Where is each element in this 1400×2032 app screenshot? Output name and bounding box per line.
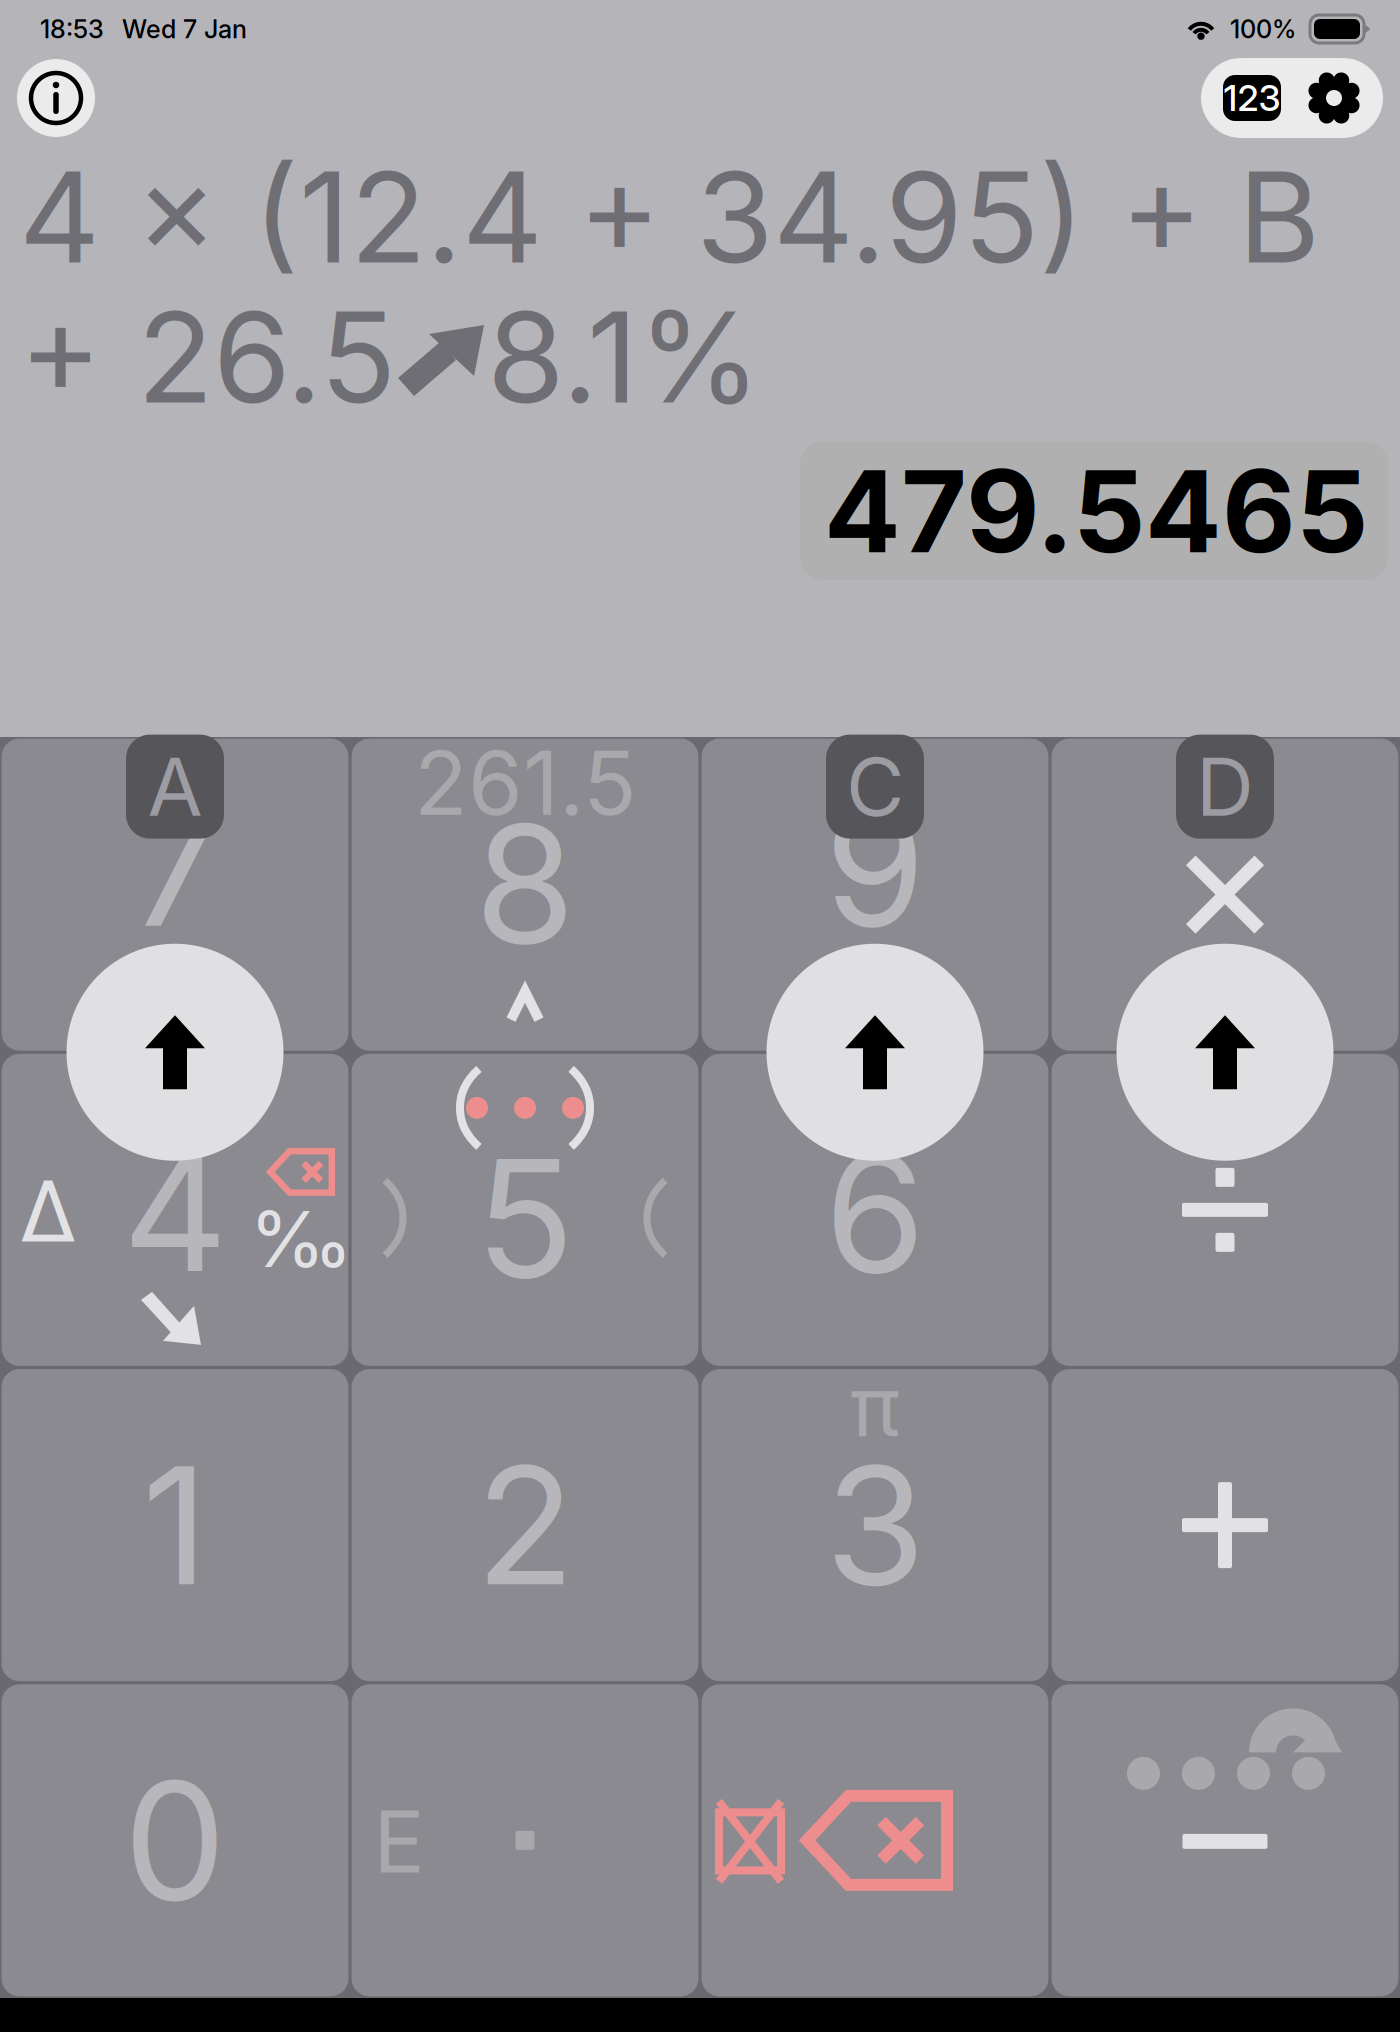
button[interactable] — [1052, 1054, 1398, 1366]
staticText: 18:53 — [40, 14, 104, 44]
staticText: 4 — [122, 1113, 227, 1310]
staticText: 479.5465 — [824, 442, 1368, 579]
button[interactable]: D — [1052, 739, 1398, 1051]
staticText: 0 — [123, 1742, 226, 1939]
staticText: 123 — [1223, 76, 1280, 120]
staticText: D — [1196, 738, 1254, 835]
button[interactable]: 3 — [702, 1369, 1048, 1681]
button[interactable]: E — [352, 1684, 698, 1996]
staticText: 100% — [1230, 14, 1296, 44]
staticText: Wed 7 Jan — [122, 14, 247, 44]
staticText: 3 — [825, 1427, 925, 1623]
button[interactable]: 0 — [2, 1684, 348, 1996]
button[interactable]: 5 — [352, 1054, 698, 1366]
button[interactable] — [1052, 1369, 1398, 1681]
staticText: 8.1% — [487, 281, 761, 433]
staticText: A — [147, 738, 202, 835]
button[interactable]: 2 — [352, 1369, 698, 1681]
button[interactable]: 6 — [702, 1054, 1048, 1366]
button[interactable]: Settings — [1294, 58, 1383, 138]
staticText: π — [850, 1356, 900, 1456]
staticText: 7 — [129, 768, 221, 965]
button[interactable]: 8 — [352, 739, 698, 1051]
button[interactable]: Numeric input — [1201, 58, 1294, 138]
staticText: 6 — [824, 1114, 925, 1311]
staticText: E — [373, 1790, 424, 1893]
button[interactable] — [1052, 1684, 1398, 1996]
button[interactable]: 4 — [2, 1054, 348, 1366]
staticText: 2 — [475, 1427, 574, 1623]
staticText: 261.5 — [414, 729, 636, 836]
staticText: Δ — [19, 1160, 76, 1262]
button[interactable]: Info — [17, 59, 95, 137]
staticText: 5 — [475, 1119, 574, 1316]
button[interactable]: 1 — [2, 1369, 348, 1681]
staticText: 8 — [474, 785, 575, 982]
staticText: 9 — [824, 768, 925, 965]
button[interactable]: 9 — [702, 739, 1048, 1051]
button[interactable] — [702, 1684, 1048, 1996]
staticText: 1 — [142, 1427, 208, 1623]
staticText: ‰ — [249, 1192, 352, 1286]
staticText: + 26.5 — [19, 281, 396, 433]
staticText: 4 × (12.4 + 34.95) + B — [19, 141, 1320, 293]
button[interactable]: 7 — [2, 739, 348, 1051]
staticText: C — [846, 738, 904, 835]
